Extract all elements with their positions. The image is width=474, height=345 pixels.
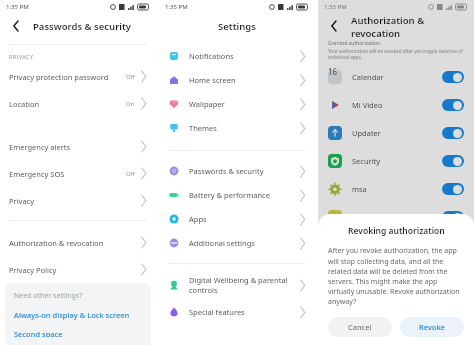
staticText: Passwords & security [189,166,264,176]
staticText: Always-on display & Lock screen [14,310,130,320]
staticText: Privacy [9,196,35,206]
staticText: Passwords & security [33,20,132,33]
button[interactable]: Back [9,19,23,33]
staticText: On [126,100,135,108]
staticText: Wallpaper [189,99,225,109]
staticText: Revoking authorization [348,225,445,237]
staticText: Updater [352,128,381,138]
staticText: Authorization & revocation [351,14,465,38]
button[interactable]: Mi Video [318,91,474,119]
staticText: Home screen [189,75,236,85]
button[interactable]: Privacy Policy [0,256,156,283]
staticText: Special features [189,307,245,317]
staticText: 1:35 PM [324,3,347,11]
staticText: Off [126,73,135,81]
staticText: Calendar [352,72,384,82]
staticText: Privacy Policy [9,265,57,275]
staticText: Revoke [419,322,445,332]
staticText: Notifications [189,51,234,61]
staticText: Granted authorization [328,40,381,47]
button[interactable]: Apps [159,207,315,231]
staticText: Off [126,170,135,178]
staticText: Emergency alerts [9,142,71,152]
button[interactable]: Toggle [442,183,464,195]
staticText: Cancel [348,322,372,332]
button[interactable]: Location [0,90,156,117]
staticText: Battery & performance [189,190,270,200]
button[interactable]: msa [318,175,474,203]
staticText: Security [352,156,381,166]
button[interactable]: Updater [318,119,474,147]
button[interactable]: Wallpaper [159,92,315,116]
staticText: 1:35 PM [6,3,29,11]
button[interactable]: Toggle [442,211,464,223]
button[interactable]: Security [318,147,474,175]
staticText: Additional settings [189,238,255,248]
button[interactable]: Always-on display & Lock screen [14,310,142,320]
staticText: After you revoke authorization, the app … [328,246,464,306]
other: Back [327,19,341,33]
staticText: 1:35 PM [165,3,188,11]
button[interactable]: Second space [14,329,142,337]
staticText: 16 [328,66,338,77]
button[interactable]: Toggle [318,203,474,231]
button[interactable]: Revoke [400,317,464,337]
staticText: Privacy protection password [9,72,109,82]
staticText: Your authorization will be revoked after… [328,48,464,60]
button[interactable]: Passwords & security [159,159,315,183]
staticText: Emergency SOS [9,169,65,179]
button[interactable]: Emergency alerts [0,133,156,160]
button[interactable]: Cancel [328,317,392,337]
staticText: Authorization & revocation [9,238,104,248]
staticText: Digital Wellbeing & parental [189,275,288,285]
staticText: Apps [189,214,207,224]
button[interactable]: Emergency SOS [0,160,156,187]
button[interactable]: Calendar [318,63,474,91]
button[interactable]: Privacy [0,187,156,214]
button[interactable]: Home screen [159,68,315,92]
button[interactable]: Battery & performance [159,183,315,207]
staticText: msa [352,184,367,194]
button[interactable]: Special features [159,300,315,324]
button[interactable]: Toggle [442,71,464,83]
staticText: Themes [189,123,217,133]
button[interactable]: Privacy protection password [0,63,156,90]
staticText: Second space [14,329,63,337]
button[interactable]: Notifications [159,44,315,68]
staticText: Need other settings? [14,291,83,301]
button[interactable]: Themes [159,116,315,140]
button[interactable]: Back [327,19,341,33]
staticText: Settings [218,20,256,33]
button[interactable]: Toggle [442,155,464,167]
staticText: Mi Video [352,100,383,110]
staticText: Location [9,99,40,109]
button[interactable]: Toggle [442,127,464,139]
other: Back [9,19,23,33]
staticText: controls [189,285,218,295]
button[interactable]: Digital Wellbeing & parental [159,270,315,300]
button[interactable]: Authorization & revocation [0,229,156,256]
button[interactable]: Toggle [442,99,464,111]
staticText: PRIVACY [9,53,34,60]
button[interactable]: Additional settings [159,231,315,255]
